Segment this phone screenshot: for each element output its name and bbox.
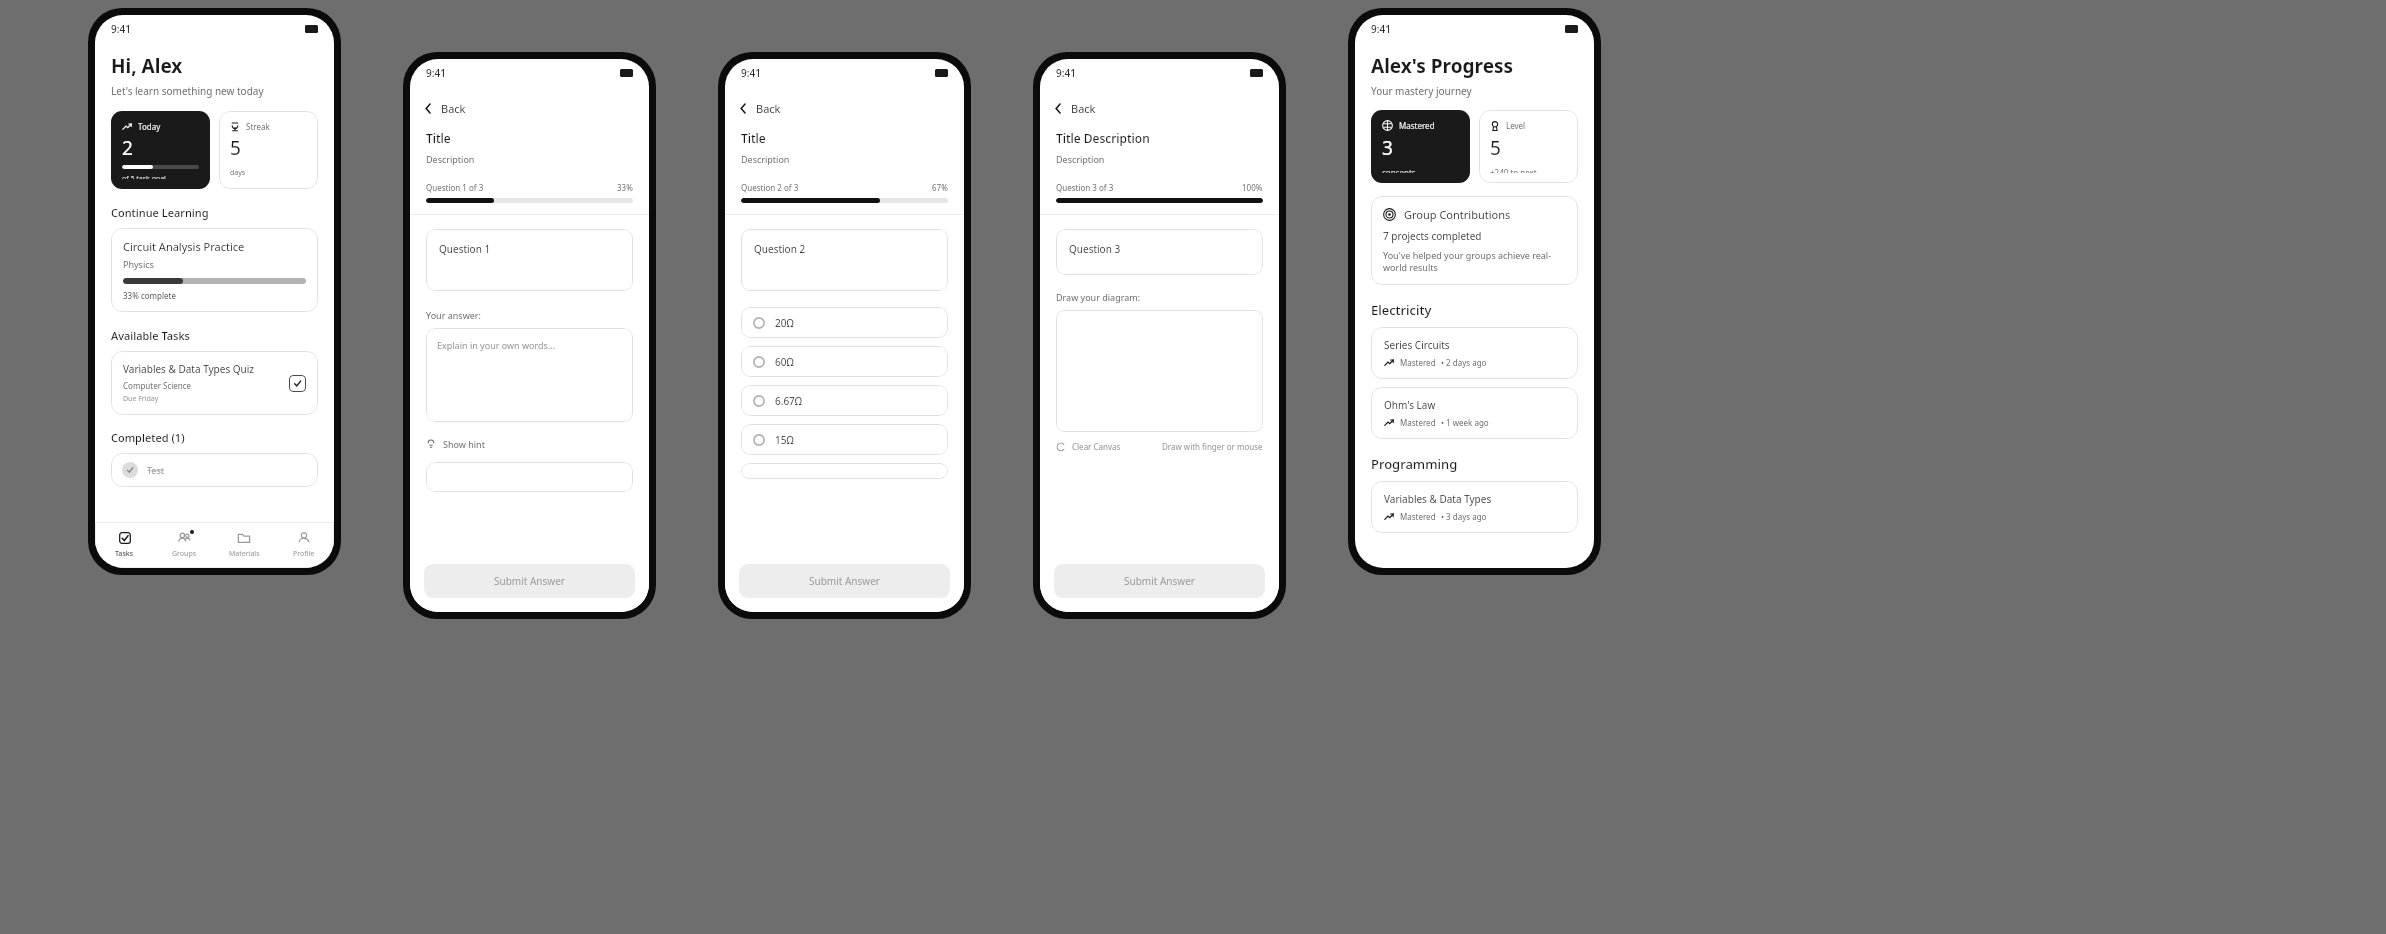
staticText: Group Contributions: [1404, 207, 1511, 222]
staticText: Title: [741, 130, 766, 146]
staticText: Profile: [293, 549, 315, 559]
staticText: concepts: [1382, 167, 1416, 173]
staticText: Due Friday: [123, 394, 159, 404]
staticText: days: [230, 168, 246, 178]
staticText: Programming: [1371, 455, 1458, 473]
staticText: 5: [1490, 135, 1501, 161]
button[interactable]: Show hint: [426, 438, 485, 450]
staticText: Mastered: [1400, 511, 1436, 522]
staticText: Title: [426, 130, 451, 146]
staticText: Level: [1506, 120, 1526, 131]
button[interactable]: Variables & Data Types Quiz: [111, 351, 318, 415]
staticText: Mastered: [1400, 417, 1436, 428]
staticText: Draw your diagram:: [1056, 291, 1141, 303]
staticText: Mastered: [1400, 357, 1436, 368]
staticText: Electricity: [1371, 301, 1432, 319]
staticText: Ohm's Law: [1384, 398, 1436, 412]
staticText: Back: [441, 101, 466, 116]
staticText: Series Circuits: [1384, 338, 1450, 352]
staticText: Mastered: [1399, 120, 1435, 131]
button[interactable]: 6.67Ω: [741, 385, 948, 416]
staticText: 20Ω: [775, 316, 794, 330]
staticText: 33%: [617, 182, 633, 193]
staticText: Streak: [246, 121, 270, 132]
staticText: Question 2: [754, 242, 806, 256]
staticText: Computer Science: [123, 380, 192, 391]
button[interactable]: Level: [1479, 110, 1578, 183]
staticText: Question 3: [1069, 242, 1121, 256]
staticText: 60Ω: [775, 355, 794, 369]
button[interactable]: Groups: [154, 522, 214, 568]
staticText: 100%: [1242, 182, 1263, 193]
staticText: 9:41: [426, 66, 446, 80]
staticText: 15Ω: [775, 433, 794, 447]
button[interactable]: Submit Answer: [739, 564, 950, 598]
button[interactable]: Ohm's Law: [1371, 387, 1578, 439]
button[interactable]: Materials: [214, 522, 274, 568]
staticText: Submit Answer: [494, 574, 565, 588]
staticText: +240 to next: [1490, 167, 1537, 173]
button[interactable]: Circuit Analysis Practice: [111, 228, 318, 312]
staticText: Back: [1071, 101, 1096, 116]
button[interactable]: Group Contributions: [1371, 196, 1578, 285]
staticText: Question 1: [439, 242, 491, 256]
staticText: You've helped your groups achieve real-w…: [1383, 249, 1566, 274]
button[interactable]: Series Circuits: [1371, 327, 1578, 379]
staticText: Hi, Alex: [111, 53, 183, 79]
staticText: 9:41: [111, 22, 131, 36]
staticText: 9:41: [741, 66, 761, 80]
staticText: 9:41: [1056, 66, 1076, 80]
button[interactable]: Submit Answer: [424, 564, 635, 598]
staticText: Submit Answer: [809, 574, 880, 588]
staticText: 5: [230, 135, 241, 161]
staticText: Back: [756, 101, 781, 116]
button[interactable]: Mastered: [1371, 110, 1470, 183]
staticText: Title Description: [1056, 130, 1150, 146]
button[interactable]: Explain in your own words...: [426, 328, 633, 422]
staticText: Today: [138, 121, 161, 132]
staticText: • 1 week ago: [1441, 417, 1489, 428]
staticText: Question 3 of 3: [1056, 182, 1114, 193]
staticText: 6.67Ω: [775, 394, 803, 408]
staticText: Let's learn something new today: [111, 84, 264, 98]
button[interactable]: Submit Answer: [1054, 564, 1265, 598]
staticText: Variables & Data Types: [1384, 492, 1492, 506]
button[interactable]: Tasks: [95, 522, 154, 568]
staticText: Test: [147, 464, 165, 476]
staticText: Show hint: [443, 438, 485, 450]
staticText: Completed (1): [111, 430, 185, 445]
staticText: Available Tasks: [111, 328, 190, 343]
staticText: 2: [122, 135, 133, 161]
staticText: Clear Canvas: [1072, 441, 1121, 452]
staticText: Description: [426, 153, 475, 165]
staticText: Explain in your own words...: [437, 339, 556, 351]
staticText: 9:41: [1371, 22, 1391, 36]
button[interactable]: Streak: [219, 111, 318, 189]
staticText: Groups: [172, 549, 197, 559]
button[interactable]: Back: [737, 101, 781, 116]
staticText: Tasks: [115, 549, 134, 559]
staticText: Materials: [229, 549, 260, 559]
staticText: Circuit Analysis Practice: [123, 239, 245, 254]
button[interactable]: Today: [111, 111, 210, 189]
button[interactable]: Test: [111, 453, 318, 487]
staticText: • 3 days ago: [1441, 511, 1487, 522]
button[interactable]: Profile: [274, 522, 334, 568]
staticText: 7 projects completed: [1383, 229, 1482, 243]
button[interactable]: Variables & Data Types: [1371, 481, 1578, 533]
button[interactable]: 15Ω: [741, 424, 948, 455]
button[interactable]: 60Ω: [741, 346, 948, 377]
staticText: Description: [741, 153, 790, 165]
button[interactable]: Back: [422, 101, 466, 116]
staticText: Variables & Data Types Quiz: [123, 362, 255, 376]
staticText: Description: [1056, 153, 1105, 165]
button[interactable]: Drawing canvas: [1056, 310, 1263, 432]
button[interactable]: Back: [1052, 101, 1096, 116]
button[interactable]: Clear Canvas: [1056, 441, 1121, 452]
button[interactable]: 20Ω: [741, 307, 948, 338]
staticText: 33% complete: [123, 290, 176, 301]
staticText: Draw with finger or mouse: [1162, 441, 1263, 452]
staticText: 3: [1382, 135, 1393, 161]
staticText: Continue Learning: [111, 205, 209, 220]
staticText: Your mastery journey: [1371, 84, 1472, 98]
